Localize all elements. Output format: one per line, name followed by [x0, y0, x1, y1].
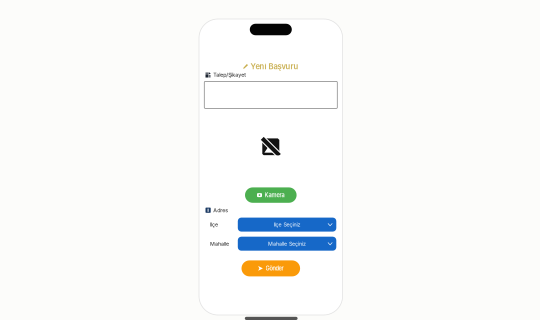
- staticText: Adres: [213, 207, 228, 213]
- button[interactable]: İlçe Seçiniz: [238, 218, 336, 232]
- button[interactable]: Mahalle Seçiniz: [238, 237, 336, 251]
- staticText: Mahalle Seçiniz: [268, 240, 306, 247]
- staticText: Mahalle: [210, 240, 229, 247]
- staticText: İlçe: [210, 221, 218, 228]
- staticText: Talep/Şikayet: [213, 72, 246, 78]
- staticText: Gönder: [265, 265, 283, 272]
- staticText: İlçe Seçiniz: [274, 221, 301, 228]
- staticText: Yeni Başvuru: [250, 62, 298, 71]
- button[interactable]: Gönder: [241, 260, 300, 276]
- staticText: Kamera: [265, 192, 285, 198]
- button[interactable]: Kamera: [245, 187, 297, 203]
